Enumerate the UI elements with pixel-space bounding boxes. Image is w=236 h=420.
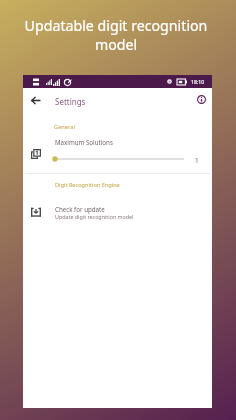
staticText: General [54,123,75,131]
button[interactable]: Back [26,91,45,110]
staticText: Maximum Solutions [55,138,113,146]
staticText: Digit Recognition Engine [55,181,120,189]
staticText: Updatable digit recognition model [0,16,234,55]
staticText: Check for update [55,205,105,213]
button[interactable] [23,200,212,224]
staticText: Update digit recognition model [55,213,134,220]
button[interactable]: About [192,90,211,109]
staticText: 18:10 [191,78,205,85]
button[interactable] [23,133,212,171]
staticText: 1 [195,156,199,165]
staticText: Settings [55,96,86,107]
